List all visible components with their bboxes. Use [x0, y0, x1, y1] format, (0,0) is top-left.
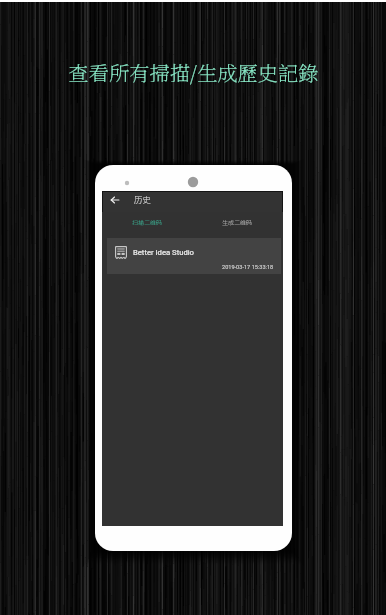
staticText: Better Idea Studio: [133, 248, 194, 257]
button[interactable]: Back: [107, 192, 123, 208]
staticText: 查看所有掃描/生成歷史記錄: [68, 58, 319, 87]
staticText: 历史: [134, 193, 151, 205]
staticText: 2019-03-17 15:33:18: [222, 264, 274, 271]
staticText: 生成二维码: [222, 218, 253, 227]
button[interactable]: 扫描二维码: [102, 212, 192, 236]
staticText: 扫描二维码: [132, 218, 163, 227]
button[interactable]: 生成二维码: [192, 212, 283, 236]
button[interactable]: Better Idea Studio: [107, 238, 281, 274]
